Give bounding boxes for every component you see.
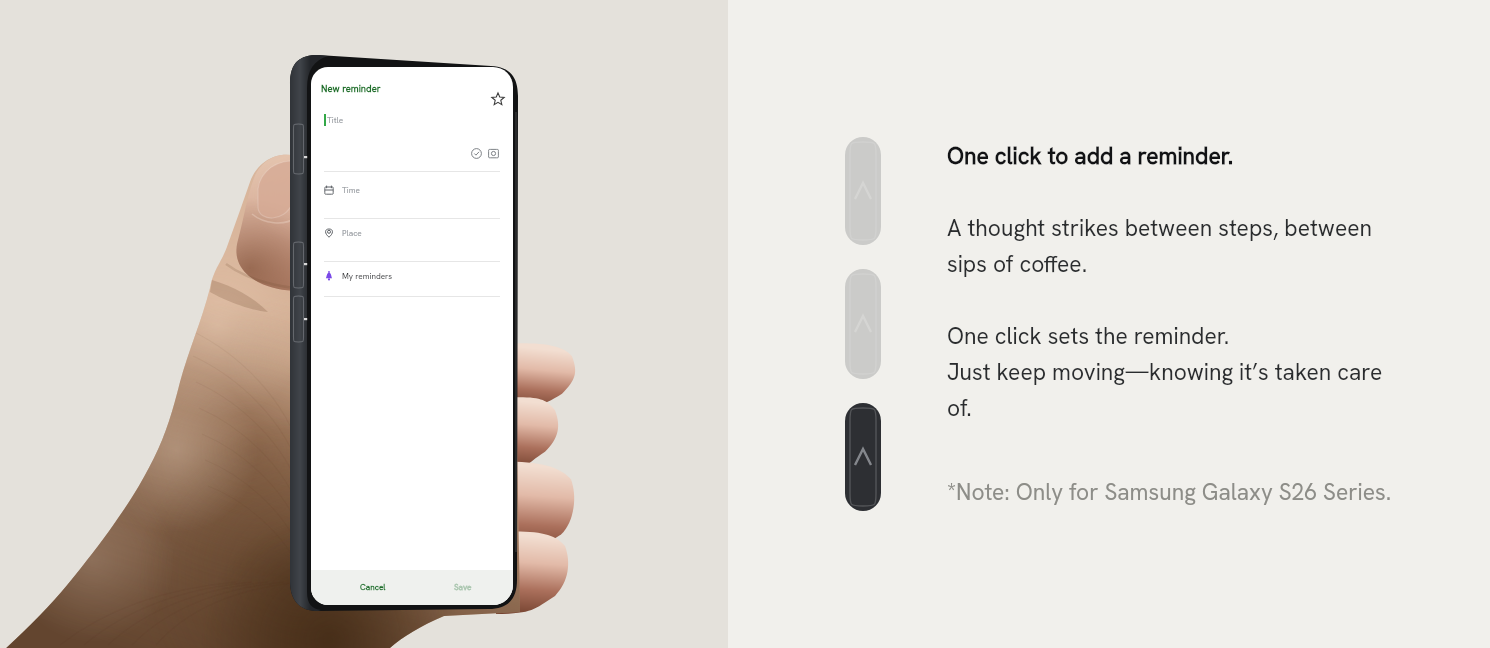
button[interactable]: New reminder: [321, 82, 381, 94]
staticText: Title: [327, 115, 344, 126]
button[interactable]: My reminders: [324, 263, 500, 289]
staticText: One click to add a reminder.: [947, 141, 1234, 171]
staticText: A thought strikes between steps, between: [947, 213, 1372, 243]
button[interactable]: Side key: [845, 137, 881, 245]
button[interactable]: Time: [324, 177, 500, 203]
staticText: Cancel: [360, 582, 386, 593]
staticText: sips of coffee.: [947, 249, 1088, 279]
staticText: My reminders: [342, 271, 393, 282]
staticText: of.: [947, 393, 972, 423]
button[interactable]: Side key: [845, 269, 881, 379]
button[interactable]: Checklist: [471, 148, 482, 159]
staticText: *Note: Only for Samsung Galaxy S26 Serie…: [947, 477, 1392, 507]
staticText: Time: [342, 185, 360, 196]
staticText: Save: [454, 582, 472, 593]
button[interactable]: Save: [437, 570, 489, 605]
button[interactable]: Side key: [845, 403, 881, 511]
staticText: One click sets the reminder.: [947, 321, 1230, 351]
button[interactable]: Place: [324, 220, 500, 246]
button[interactable]: Cancel: [347, 570, 399, 605]
staticText: Place: [342, 228, 362, 239]
button[interactable]: Camera: [488, 148, 499, 159]
staticText: Just keep moving—knowing it’s taken care: [947, 357, 1383, 387]
button[interactable]: Favourite: [491, 92, 505, 106]
